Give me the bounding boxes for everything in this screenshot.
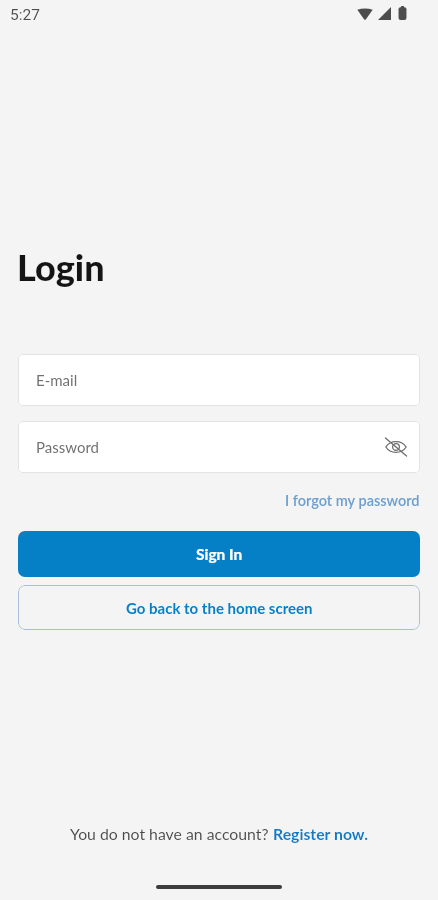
staticText: Go back to the home screen: [126, 599, 313, 617]
staticText: Password: [36, 438, 99, 456]
button[interactable]: I forgot my password: [275, 488, 438, 513]
button[interactable]: Show password: [379, 430, 413, 464]
other: Mobile signal: [378, 7, 391, 20]
button[interactable]: Sign In: [18, 531, 420, 577]
staticText: 5:27: [10, 6, 40, 24]
staticText: Sign In: [196, 545, 243, 564]
other: Wi-Fi: [357, 7, 373, 20]
other: Battery: [398, 6, 407, 20]
button[interactable]: Go back to the home screen: [18, 585, 420, 630]
staticText: I forgot my password: [285, 492, 420, 509]
staticText: You do not have an account?: [70, 824, 273, 843]
button[interactable]: Password: [18, 421, 420, 473]
staticText: Login: [17, 245, 105, 288]
staticText: Register now.: [273, 824, 368, 843]
staticText: E-mail: [36, 371, 78, 389]
button[interactable]: E-mail: [18, 354, 420, 406]
button[interactable]: Register now.: [273, 824, 368, 843]
